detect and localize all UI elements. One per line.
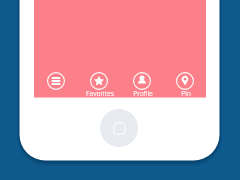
button[interactable]: Home <box>100 109 138 147</box>
staticText: Profile <box>133 89 153 98</box>
button[interactable]: Profile <box>120 72 163 97</box>
staticText: Favorites <box>86 89 114 98</box>
button[interactable]: Favorites <box>77 72 120 97</box>
button[interactable]: Menu <box>34 72 77 97</box>
button[interactable]: Pin <box>163 72 206 97</box>
staticText: Pin <box>181 89 191 98</box>
